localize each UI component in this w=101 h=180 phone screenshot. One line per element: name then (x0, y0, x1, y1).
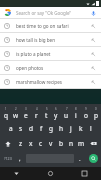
button[interactable]: is pluto a planet (0, 47, 101, 60)
staticText: v (49, 139, 53, 148)
staticText: is pluto a planet (16, 51, 89, 57)
staticText: open photos (16, 65, 89, 71)
staticText: 5 (46, 107, 48, 111)
button[interactable]: Append how tall is big ben (89, 36, 97, 44)
button[interactable]: Search or say "Ok Google" (0, 7, 101, 18)
button[interactable]: 6 (51, 105, 61, 121)
button[interactable]: , (15, 151, 25, 166)
button[interactable]: g (46, 121, 56, 136)
staticText: s (19, 124, 23, 133)
button[interactable]: 3 (21, 105, 31, 121)
staticText: u (64, 111, 69, 120)
staticText: ?123 (4, 156, 12, 161)
button[interactable]: 1 (0, 105, 11, 121)
staticText: how tall is big ben (16, 37, 89, 43)
staticText: 0 (95, 107, 97, 111)
staticText: m (78, 139, 85, 148)
staticText: r (35, 111, 38, 120)
staticText: 8 (75, 107, 77, 111)
button[interactable]: Append best time to go on safari (89, 22, 97, 30)
button[interactable]: 4 (31, 105, 41, 121)
button[interactable]: z (16, 136, 26, 151)
button[interactable]: Voice search (89, 9, 97, 17)
button[interactable]: c (36, 136, 46, 151)
button[interactable]: ?123 (0, 151, 15, 166)
button[interactable]: m (76, 136, 86, 151)
button[interactable]: Recents (67, 167, 101, 180)
button[interactable]: Shift (0, 136, 16, 151)
button[interactable]: Back (0, 167, 33, 180)
staticText: , (19, 155, 21, 163)
staticText: g (49, 124, 53, 133)
staticText: i (75, 111, 77, 120)
staticText: f (40, 124, 43, 133)
button[interactable]: l (86, 121, 96, 136)
button[interactable]: x (26, 136, 36, 151)
button[interactable]: b (56, 136, 66, 151)
staticText: Search or say "Ok Google" (16, 10, 72, 16)
button[interactable]: d (26, 121, 36, 136)
button[interactable]: 5 (41, 105, 51, 121)
staticText: 6 (55, 107, 57, 111)
staticText: k (79, 124, 83, 133)
staticText: 7 (66, 107, 68, 111)
staticText: w (13, 111, 19, 120)
button[interactable]: 7 (61, 105, 71, 121)
button[interactable]: Append marshmallow recipes (89, 78, 97, 86)
staticText: 1 (5, 107, 7, 111)
staticText: e (24, 111, 28, 120)
staticText: o (84, 111, 88, 120)
button[interactable]: Backspace (86, 136, 101, 151)
staticText: n (69, 139, 74, 148)
button[interactable]: open photos (0, 61, 101, 74)
staticText: 3 (25, 107, 27, 111)
button[interactable]: Append open photos (89, 64, 97, 72)
staticText: p (94, 111, 98, 120)
staticText: q (4, 111, 8, 120)
staticText: j (70, 124, 72, 133)
staticText: 4 (36, 107, 38, 111)
button[interactable]: 8 (71, 105, 81, 121)
button[interactable]: marshmallow recipes (0, 75, 101, 88)
button[interactable]: Home (33, 167, 67, 180)
staticText: 2 (15, 107, 17, 111)
staticText: 9 (85, 107, 87, 111)
button[interactable]: h (56, 121, 66, 136)
button[interactable]: Append is pluto a planet (89, 50, 97, 58)
staticText: l (90, 124, 92, 133)
staticText: c (39, 139, 43, 148)
staticText: d (29, 124, 33, 133)
staticText: t (45, 111, 48, 120)
button[interactable]: 0 (91, 105, 101, 121)
staticText: h (59, 124, 64, 133)
button[interactable]: f (36, 121, 46, 136)
button[interactable]: 2 (11, 105, 21, 121)
button[interactable]: best time to go on safari (0, 19, 101, 32)
staticText: best time to go on safari (16, 23, 89, 29)
button[interactable]: s (16, 121, 26, 136)
button[interactable]: j (66, 121, 76, 136)
button[interactable]: Search (85, 151, 101, 166)
staticText: marshmallow recipes (16, 79, 89, 85)
staticText: . (79, 155, 81, 163)
button[interactable]: v (46, 136, 56, 151)
staticText: y (54, 111, 58, 120)
staticText: b (59, 139, 63, 148)
staticText: x (29, 139, 33, 148)
button[interactable]: n (66, 136, 76, 151)
button[interactable]: how tall is big ben (0, 33, 101, 46)
button[interactable]: a (6, 121, 16, 136)
button[interactable]: k (76, 121, 86, 136)
button[interactable]: . (75, 151, 85, 166)
button[interactable]: 9 (81, 105, 91, 121)
staticText: z (19, 139, 23, 148)
staticText: a (9, 124, 13, 133)
